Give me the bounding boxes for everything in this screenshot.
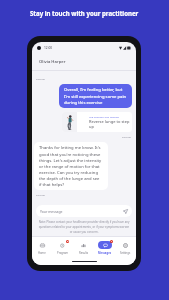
button[interactable]: Home: [32, 237, 52, 258]
staticText: Stay in touch with your practitioner: [30, 9, 139, 17]
staticText: Thanks for letting me know. It's good th…: [39, 145, 103, 187]
button[interactable]: Thanks for letting me know. It's good th…: [34, 142, 108, 190]
staticText: Program: [57, 251, 69, 255]
staticText: Overall, I'm feeling better, but I'm sti…: [64, 87, 127, 105]
staticText: Home: [38, 251, 46, 255]
staticText: 9:02 am: [122, 135, 131, 138]
staticText: Note: Please contact your healthcare pro…: [37, 220, 131, 233]
staticText: 3: [67, 240, 69, 243]
staticText: 9:00 am: [36, 77, 45, 80]
staticText: Olivia Harper: [39, 59, 66, 65]
staticText: Your message: [40, 209, 63, 214]
staticText: 12:00: [44, 46, 53, 50]
staticText: Messages: [98, 251, 112, 255]
button[interactable]: 1: [94, 237, 115, 258]
staticText: Settings: [120, 251, 131, 255]
button[interactable]: Results: [73, 237, 94, 258]
button[interactable]: Settings: [115, 237, 136, 258]
button[interactable]: Your message: [36, 205, 132, 217]
other: Send: [123, 209, 128, 214]
staticText: Leg strength and Mobility: [89, 115, 120, 118]
staticText: 1: [111, 240, 113, 243]
button[interactable]: Overall, I'm feeling better, but I'm sti…: [59, 84, 132, 108]
staticText: Results: [79, 251, 89, 255]
staticText: Reverse lunge to step up: [89, 119, 131, 130]
button[interactable]: Leg strength and Mobility: [62, 112, 132, 132]
button[interactable]: 3: [52, 237, 73, 258]
staticText: 9:04 am: [36, 193, 45, 196]
